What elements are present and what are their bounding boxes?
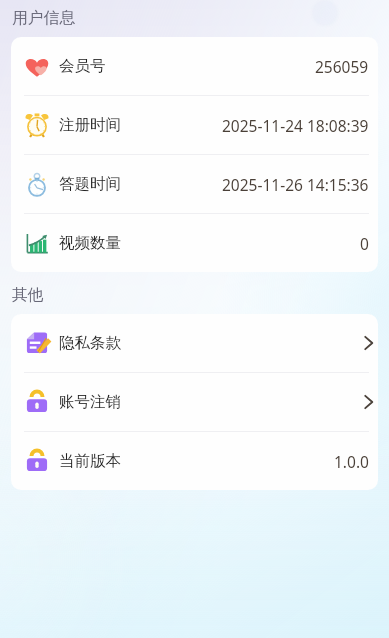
staticText: 1.0.0	[334, 451, 369, 472]
button[interactable]: 注册时间	[11, 96, 378, 155]
button[interactable]: 隐私条款	[11, 314, 378, 373]
button[interactable]: 会员号	[11, 37, 378, 96]
staticText: 0	[360, 233, 369, 254]
staticText: 会员号	[59, 56, 106, 76]
staticText: 答题时间	[59, 174, 121, 194]
staticText: 注册时间	[59, 115, 121, 135]
staticText: 账号注销	[59, 392, 121, 412]
button[interactable]: 账号注销	[11, 373, 378, 432]
staticText: 2025-11-24 18:08:39	[222, 115, 369, 136]
staticText: 2025-11-26 14:15:36	[222, 174, 369, 195]
staticText: 视频数量	[59, 233, 121, 253]
staticText: 256059	[315, 56, 369, 77]
button[interactable]: 答题时间	[11, 155, 378, 214]
staticText: 其他	[12, 285, 44, 305]
staticText: 用户信息	[12, 8, 76, 28]
staticText: 当前版本	[59, 451, 121, 471]
button[interactable]: 当前版本	[11, 432, 378, 490]
staticText: 隐私条款	[59, 333, 121, 353]
button[interactable]: 视频数量	[11, 214, 378, 272]
